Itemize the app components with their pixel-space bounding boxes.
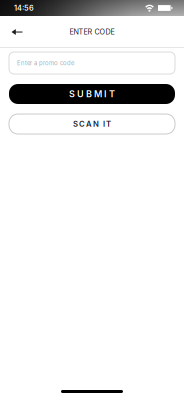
staticText: ENTER CODE <box>69 28 114 36</box>
button[interactable]: Back <box>0 17 34 47</box>
staticText: S U B M I T <box>69 88 115 99</box>
button[interactable]: S C A N I T <box>9 114 175 134</box>
staticText: 14:56 <box>14 4 34 12</box>
button[interactable]: S U B M I T <box>9 84 175 104</box>
staticText: S C A N I T <box>73 119 111 129</box>
staticText: Enter a promo code <box>17 59 74 67</box>
